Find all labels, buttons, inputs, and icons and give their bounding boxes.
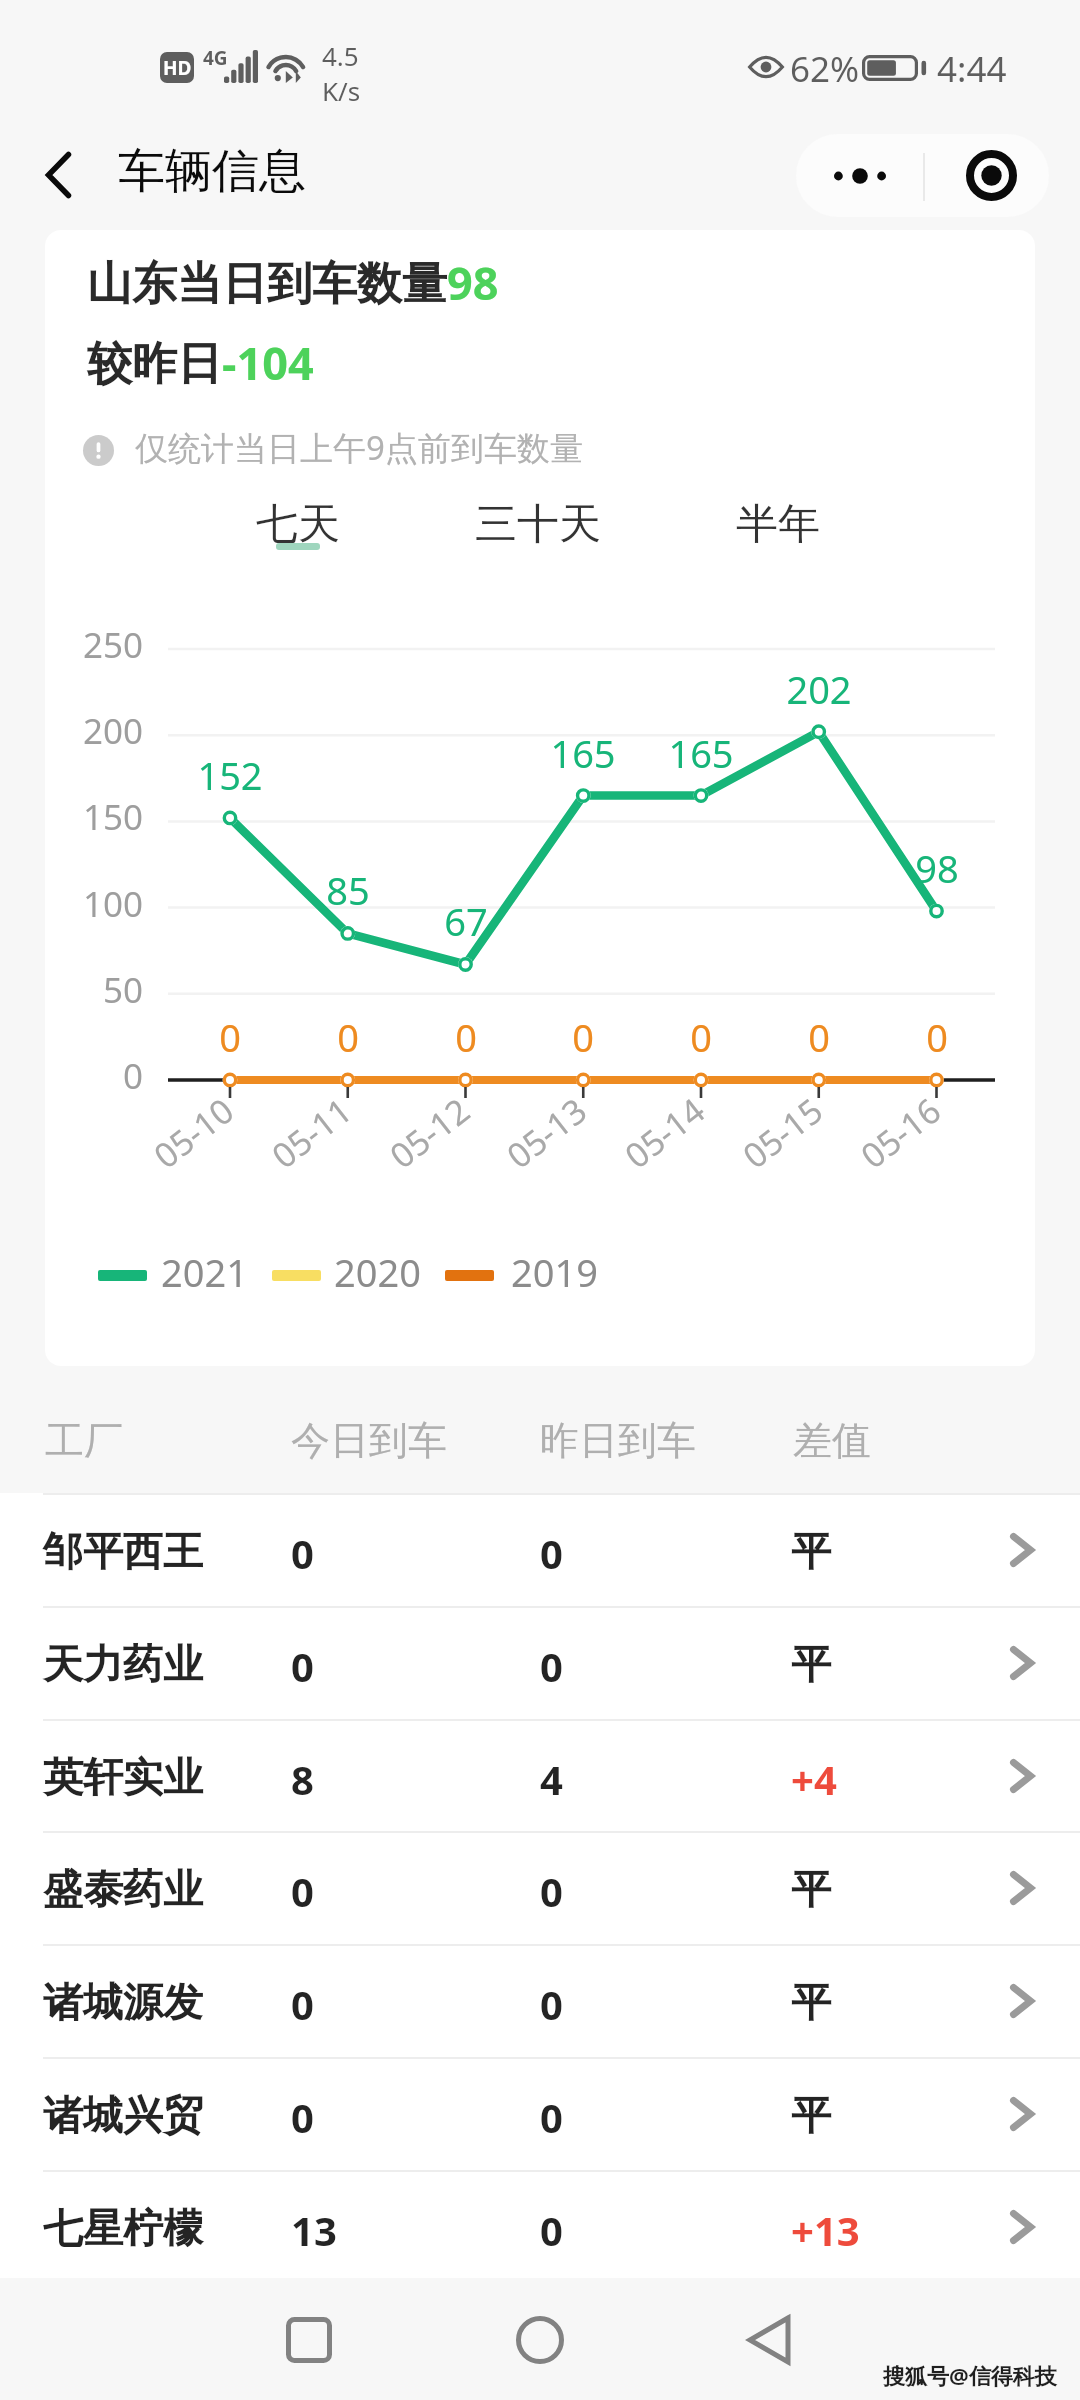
staticText: 平 [791,1526,831,1576]
staticText: 0 [291,1864,314,1918]
staticText: 较昨日 [87,336,222,393]
staticText: 平 [791,2090,831,2140]
staticText: 天力药业 [43,1639,203,1689]
staticText: 半年 [736,498,820,551]
staticText: 05-16 [851,1087,950,1178]
staticText: 150 [45,793,143,841]
staticText: 4 [540,1752,563,1806]
staticText: 152 [150,749,310,801]
staticText: 50 [45,966,143,1014]
staticText: 85 [268,864,428,916]
staticText: 8 [291,1752,314,1806]
staticText: 车辆信息 [118,142,306,201]
staticText: 0 [857,1011,1017,1063]
staticText: 0 [540,1977,563,2031]
staticText: 搜狐号@信得科技 [883,2360,1057,2390]
staticText: 67 [386,895,546,947]
staticText: 4G [203,45,228,71]
staticText: 2021 [161,1246,248,1298]
staticText: K/s [322,73,361,108]
staticText: 13 [291,2203,337,2257]
staticText: 05-12 [380,1087,479,1178]
staticText: 0 [291,1526,314,1580]
staticText: 盛泰药业 [43,1864,203,1914]
staticText: 05-14 [615,1087,714,1178]
button[interactable]: Recents [249,2280,369,2400]
staticText: 100 [45,880,143,928]
button[interactable]: 半年 [678,494,878,562]
staticText: HD [163,55,192,81]
staticText: 0 [45,1052,143,1100]
staticText: 250 [45,621,143,669]
button[interactable]: 诸城源发 [0,1944,1080,2057]
staticText: 三十天 [475,498,601,551]
staticText: +13 [791,2203,860,2257]
staticText: 0 [621,1011,781,1063]
staticText: 平 [791,1639,831,1689]
staticText: 七星柠檬 [43,2203,203,2253]
staticText: 邹平西王 [43,1526,203,1576]
staticText: 0 [540,2203,563,2257]
button[interactable]: 七天 [198,494,398,562]
staticText: 诸城源发 [43,1977,203,2027]
staticText: 差值 [793,1416,871,1465]
staticText: 202 [739,663,899,715]
staticText: 平 [791,1977,831,2027]
button[interactable]: Back [32,135,320,214]
staticText: 4.5 [322,38,359,73]
staticText: 98 [857,842,1017,894]
staticText: 0 [739,1011,899,1063]
staticText: 仅统计当日上午9点前到车数量 [135,425,583,470]
staticText: 05-13 [497,1087,596,1178]
staticText: 0 [540,2090,563,2144]
button[interactable]: 邹平西王 [0,1493,1080,1606]
button[interactable]: Back [709,2280,829,2400]
staticText: 2019 [511,1246,598,1298]
staticText: 05-10 [144,1087,243,1178]
staticText: 05-11 [262,1087,361,1178]
button[interactable]: More options [796,134,924,217]
staticText: 山东当日到车数量 [87,256,447,313]
button[interactable]: 英轩实业 [0,1719,1080,1832]
button[interactable]: 三十天 [438,494,638,562]
staticText: 62% [790,45,860,93]
staticText: 200 [45,707,143,755]
button[interactable]: 七星柠檬 [0,2170,1080,2283]
button[interactable]: 天力药业 [0,1606,1080,1719]
staticText: 昨日到车 [540,1416,696,1465]
other: Back [46,152,71,198]
button[interactable]: Close mini program [929,134,1053,217]
button[interactable]: 诸城兴贸 [0,2057,1080,2170]
staticText: 0 [540,1526,563,1580]
staticText: 0 [540,1864,563,1918]
staticText: 2020 [334,1246,421,1298]
staticText: +4 [791,1752,837,1806]
staticText: 165 [503,727,663,779]
staticText: 今日到车 [291,1416,447,1465]
staticText: 七天 [256,498,340,551]
staticText: 0 [540,1639,563,1693]
staticText: 平 [791,1864,831,1914]
button[interactable]: 盛泰药业 [0,1831,1080,1944]
staticText: 0 [268,1011,428,1063]
staticText: 工厂 [45,1416,123,1465]
staticText: 0 [291,1977,314,2031]
staticText: 0 [150,1011,310,1063]
staticText: 英轩实业 [43,1752,203,1802]
staticText: 165 [621,727,781,779]
staticText: 05-15 [733,1087,832,1178]
button[interactable]: Home [480,2280,600,2400]
staticText: 0 [291,1639,314,1693]
staticText: 0 [291,2090,314,2144]
staticText: 0 [386,1011,546,1063]
staticText: 0 [503,1011,663,1063]
staticText: 98 [447,252,499,313]
staticText: -104 [222,332,314,393]
staticText: 诸城兴贸 [43,2090,203,2140]
staticText: 4:44 [937,45,1007,93]
